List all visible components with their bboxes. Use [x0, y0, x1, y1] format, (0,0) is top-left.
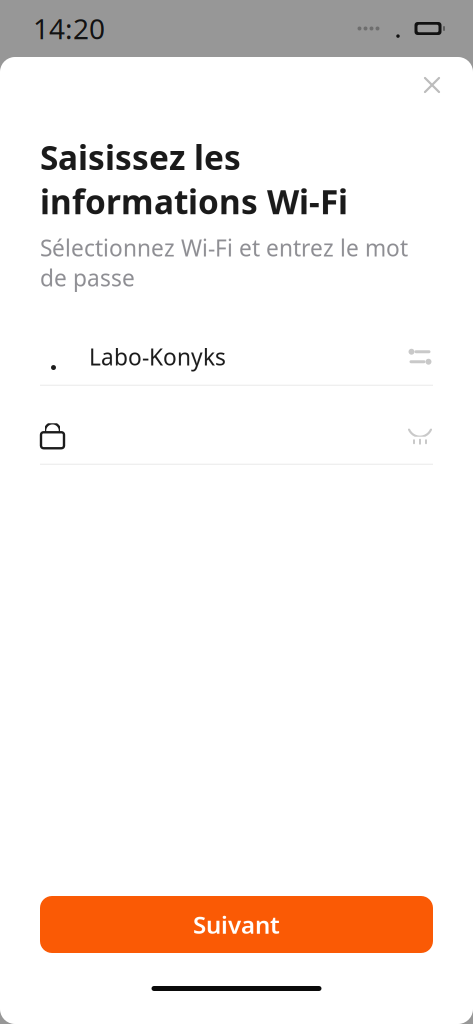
- button[interactable]: Fermer: [408, 61, 456, 109]
- staticText: Saisissez les informations Wi-Fi: [40, 135, 348, 223]
- staticText: Suivant: [193, 909, 280, 940]
- button[interactable]: [0, 408, 473, 465]
- staticText: Labo-Konyks: [89, 342, 226, 372]
- staticText: Sélectionnez Wi-Fi et entrez le mot de p…: [40, 232, 408, 293]
- staticText: 14:20: [33, 10, 105, 47]
- button[interactable]: Labo-Konyks: [0, 329, 473, 386]
- button[interactable]: Suivant: [40, 896, 433, 953]
